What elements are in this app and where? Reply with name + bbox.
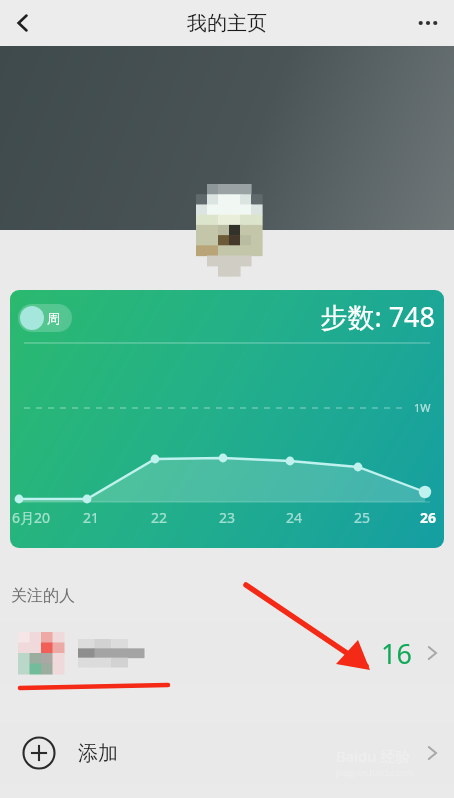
staticText: 添加 <box>78 741 118 766</box>
button[interactable]: More options <box>402 0 454 46</box>
staticText: 我的主页 <box>187 11 267 36</box>
staticText: 6月20 <box>12 508 51 527</box>
staticText: 25 <box>354 508 371 527</box>
staticText: 16 <box>381 635 412 672</box>
staticText: 周 <box>47 310 60 326</box>
button[interactable]: Back <box>0 0 46 46</box>
button[interactable]: 周 <box>18 304 72 332</box>
staticText: 23 <box>219 508 236 527</box>
staticText: 26 <box>420 508 437 527</box>
staticText: 21 <box>83 508 100 527</box>
button[interactable]: 周 <box>10 290 444 548</box>
staticText: 22 <box>151 508 168 527</box>
staticText: 步数: 748 <box>10 298 435 335</box>
staticText: 1W <box>414 400 431 415</box>
staticText: 关注的人 <box>11 586 75 606</box>
button[interactable]: 16 <box>0 622 454 684</box>
staticText: 24 <box>286 508 303 527</box>
button[interactable]: 添加 <box>0 722 454 784</box>
